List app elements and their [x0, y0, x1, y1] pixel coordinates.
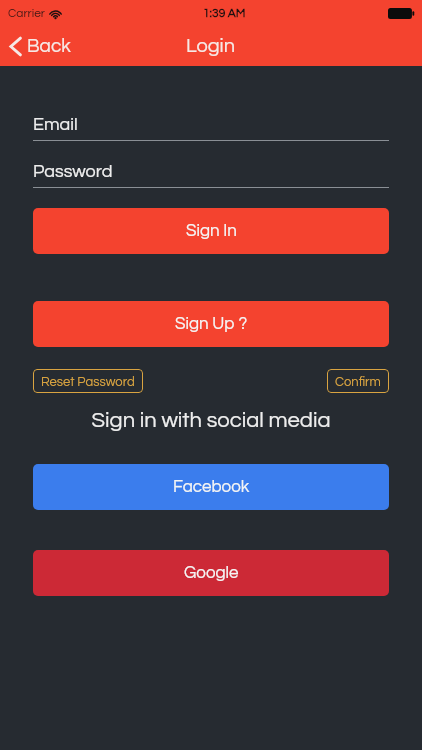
staticText: Confirm	[335, 375, 381, 388]
staticText: Email	[33, 115, 78, 134]
other: Back	[10, 37, 21, 56]
staticText: Facebook	[173, 478, 250, 496]
staticText: Carrier	[8, 7, 45, 19]
staticText: Back	[27, 36, 71, 56]
staticText: Password	[33, 162, 113, 181]
staticText: Google	[184, 564, 239, 582]
button[interactable]: Sign In	[33, 208, 389, 254]
button[interactable]: Confirm	[327, 369, 389, 393]
button[interactable]: Google	[33, 550, 389, 596]
staticText: Reset Password	[41, 375, 135, 388]
button[interactable]: Reset Password	[33, 369, 143, 393]
staticText: 1:39 AM	[203, 7, 246, 19]
button[interactable]: Back	[0, 30, 83, 62]
staticText: Sign In	[186, 222, 237, 240]
staticText: Login	[186, 36, 236, 57]
staticText: Sign Up ?	[175, 315, 248, 333]
button[interactable]: Facebook	[33, 464, 389, 510]
button[interactable]: Sign Up ?	[33, 301, 389, 347]
staticText: Sign in with social media	[33, 409, 389, 432]
